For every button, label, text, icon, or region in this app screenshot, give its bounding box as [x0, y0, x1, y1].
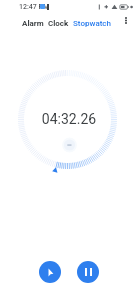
button[interactable]: Stopwatch — [73, 19, 111, 28]
button[interactable]: Lap — [39, 261, 61, 283]
button[interactable]: More options — [118, 12, 134, 28]
staticText: 04:32.26 — [0, 111, 138, 127]
button[interactable]: Clock — [48, 19, 69, 28]
button[interactable]: Pause — [77, 261, 99, 283]
button[interactable]: Alarm — [22, 19, 44, 28]
staticText: 12:47 PM — [19, 3, 50, 11]
